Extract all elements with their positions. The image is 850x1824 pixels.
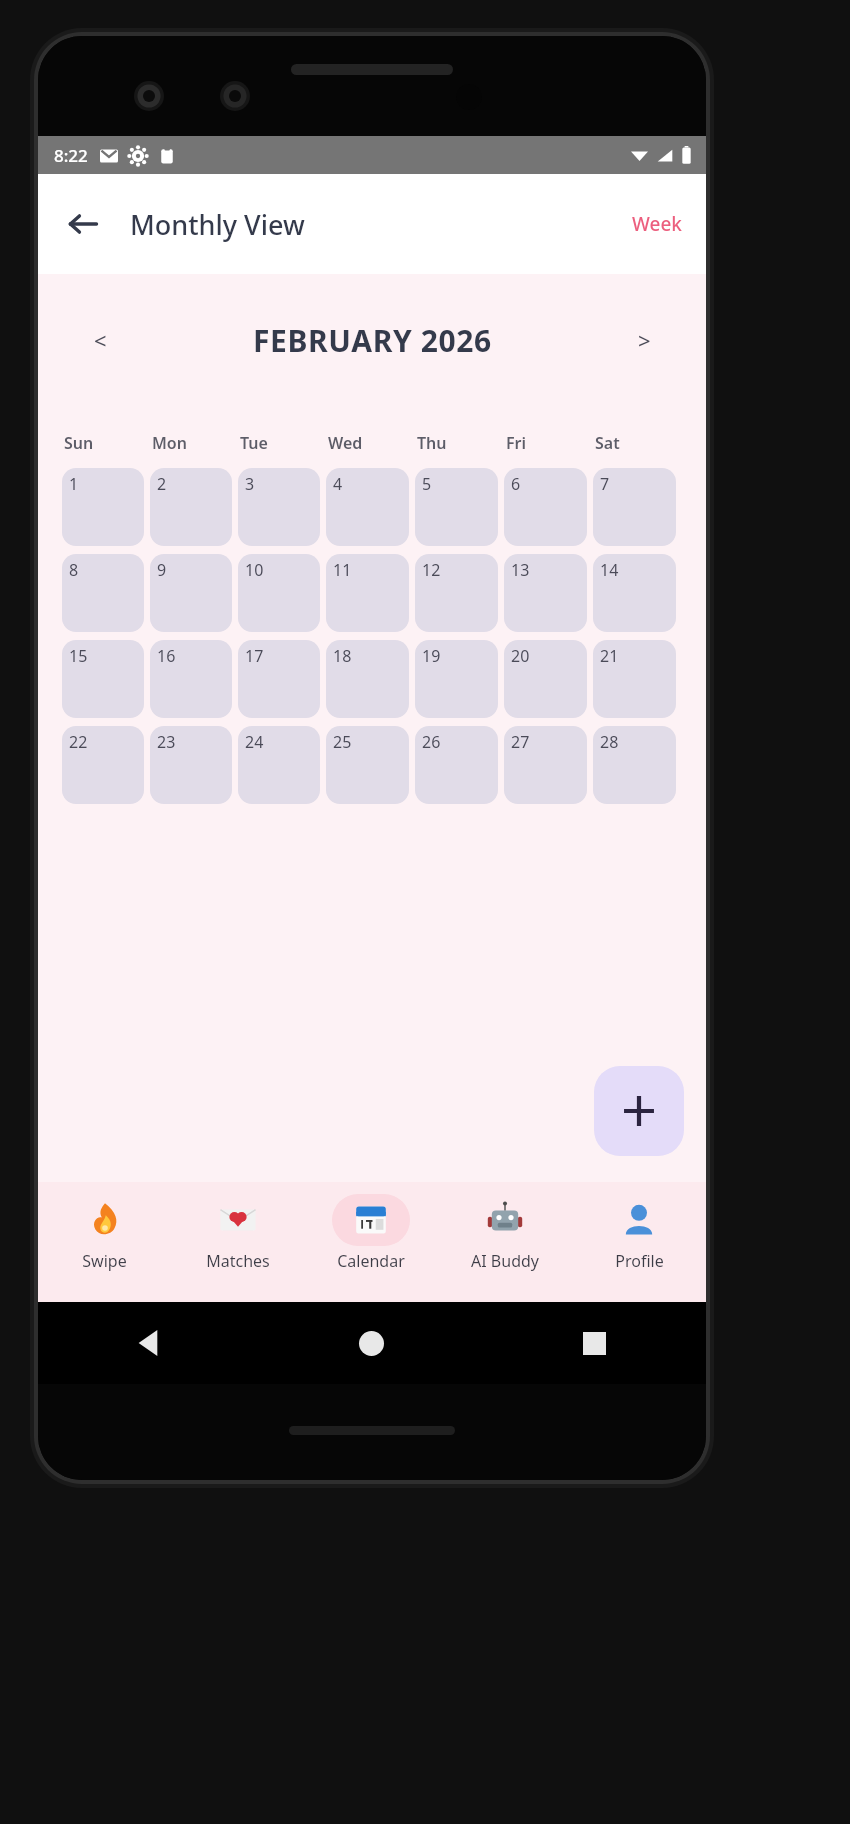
staticText: Monthly View <box>130 206 305 243</box>
staticText: Week <box>632 211 682 237</box>
button[interactable]: 6 <box>504 468 587 546</box>
button[interactable]: 5 <box>415 468 498 546</box>
staticText: Swipe <box>82 1250 127 1272</box>
button[interactable]: 13 <box>504 554 587 632</box>
staticText: 6 <box>511 473 521 495</box>
staticText: 21 <box>600 645 619 667</box>
staticText: 19 <box>422 645 441 667</box>
button[interactable]: Back <box>38 1302 260 1384</box>
staticText: FEBRUARY 2026 <box>253 320 492 361</box>
staticText: 27 <box>511 731 530 753</box>
staticText: 26 <box>422 731 441 753</box>
staticText: 17 <box>245 645 264 667</box>
staticText: Calendar <box>337 1250 405 1272</box>
button[interactable]: 23 <box>150 726 232 804</box>
button[interactable]: 19 <box>415 640 498 718</box>
staticText: 3 <box>245 473 255 495</box>
button[interactable]: 24 <box>238 726 320 804</box>
staticText: Sun <box>64 432 94 454</box>
button[interactable]: Add event <box>594 1066 684 1156</box>
staticText: 5 <box>422 473 432 495</box>
staticText: 8:22 <box>54 144 88 167</box>
staticText: > <box>638 325 651 355</box>
button[interactable]: Profile <box>572 1194 706 1302</box>
staticText: Wed <box>328 432 363 454</box>
staticText: 4 <box>333 473 343 495</box>
staticText: 23 <box>157 731 176 753</box>
button[interactable]: 26 <box>415 726 498 804</box>
staticText: Thu <box>417 432 447 454</box>
staticText: 15 <box>69 645 88 667</box>
staticText: Sat <box>595 432 620 454</box>
button[interactable]: Back <box>56 197 110 251</box>
staticText: 11 <box>333 559 352 581</box>
button[interactable]: 2 <box>150 468 232 546</box>
staticText: 14 <box>600 559 619 581</box>
button[interactable]: 9 <box>150 554 232 632</box>
button[interactable]: 18 <box>326 640 409 718</box>
button[interactable]: 25 <box>326 726 409 804</box>
staticText: Mon <box>152 432 187 454</box>
button[interactable]: AI Buddy <box>438 1194 572 1302</box>
button[interactable]: 17 <box>238 640 320 718</box>
button[interactable]: 27 <box>504 726 587 804</box>
button[interactable]: Recent apps <box>483 1302 706 1384</box>
staticText: Profile <box>615 1250 664 1272</box>
button[interactable]: Previous month <box>74 314 126 366</box>
staticText: 13 <box>511 559 530 581</box>
button[interactable]: 4 <box>326 468 409 546</box>
staticText: 10 <box>245 559 264 581</box>
button[interactable]: Calendar <box>304 1194 438 1302</box>
button[interactable]: Swipe <box>38 1194 171 1302</box>
staticText: Matches <box>206 1250 270 1272</box>
staticText: 28 <box>600 731 619 753</box>
button[interactable]: Next month <box>618 314 670 366</box>
staticText: 25 <box>333 731 352 753</box>
button[interactable]: 16 <box>150 640 232 718</box>
button[interactable]: 1 <box>62 468 144 546</box>
staticText: 22 <box>69 731 88 753</box>
staticText: 20 <box>511 645 530 667</box>
button[interactable]: 28 <box>593 726 676 804</box>
button[interactable]: 14 <box>593 554 676 632</box>
button[interactable]: 11 <box>326 554 409 632</box>
staticText: < <box>94 325 107 355</box>
button[interactable]: 22 <box>62 726 144 804</box>
staticText: 8 <box>69 559 79 581</box>
staticText: 1 <box>69 473 79 495</box>
button[interactable]: 12 <box>415 554 498 632</box>
button[interactable]: 8 <box>62 554 144 632</box>
staticText: 9 <box>157 559 167 581</box>
staticText: 18 <box>333 645 352 667</box>
staticText: 12 <box>422 559 441 581</box>
button[interactable]: Matches <box>171 1194 304 1302</box>
staticText: AI Buddy <box>471 1250 539 1272</box>
button[interactable]: Week <box>624 203 690 245</box>
button[interactable]: 10 <box>238 554 320 632</box>
staticText: 2 <box>157 473 167 495</box>
button[interactable]: 20 <box>504 640 587 718</box>
staticText: 24 <box>245 731 264 753</box>
staticText: Tue <box>240 432 268 454</box>
button[interactable]: 3 <box>238 468 320 546</box>
button[interactable]: 15 <box>62 640 144 718</box>
button[interactable]: 7 <box>593 468 676 546</box>
button[interactable]: Home <box>260 1302 483 1384</box>
staticText: 7 <box>600 473 610 495</box>
staticText: Fri <box>506 432 527 454</box>
staticText: 16 <box>157 645 176 667</box>
button[interactable]: 21 <box>593 640 676 718</box>
